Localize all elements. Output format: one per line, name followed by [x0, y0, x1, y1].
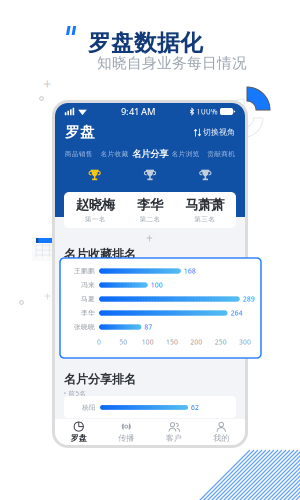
- staticText: 150: [166, 338, 178, 346]
- staticText: 168: [184, 267, 196, 275]
- staticText: 名片分享排名: [64, 372, 136, 387]
- staticText: 名片收藏排名: [64, 247, 136, 262]
- staticText: 张晓晓: [74, 323, 95, 331]
- button[interactable]: 传播: [102, 419, 150, 445]
- staticText: 罗盘数据化: [88, 29, 203, 57]
- staticText: 知晓自身业务每日情况: [97, 54, 247, 72]
- staticText: 100: [142, 338, 154, 346]
- button[interactable]: 切换视角: [194, 127, 235, 137]
- staticText: +: [146, 230, 153, 246]
- button[interactable]: 商品销售: [61, 150, 97, 158]
- staticText: 前5名: [68, 389, 86, 398]
- staticText: 罗盘: [65, 123, 95, 141]
- staticText: 马夏: [81, 295, 95, 303]
- staticText: 贡献商机: [207, 150, 235, 158]
- staticText: 名片浏览: [172, 150, 200, 158]
- staticText: 第三名: [194, 215, 215, 223]
- button[interactable]: 名片浏览: [168, 150, 203, 158]
- button[interactable]: 贡献商机: [203, 150, 239, 158]
- staticText: 客户: [166, 433, 182, 443]
- staticText: 切换视角: [203, 127, 235, 137]
- button[interactable]: 名片分享: [132, 148, 168, 160]
- staticText: 100%: [196, 106, 218, 117]
- staticText: 0: [97, 338, 101, 346]
- button[interactable]: 名片收藏: [97, 150, 132, 158]
- staticText: 第一名: [85, 215, 106, 223]
- staticText: 名片分享: [132, 148, 168, 160]
- staticText: 马萧萧: [185, 197, 224, 213]
- staticText: 李华: [137, 197, 163, 213]
- staticText: 87: [144, 323, 152, 331]
- staticText: +: [44, 288, 51, 304]
- staticText: 50: [119, 338, 127, 346]
- staticText: 我的: [213, 433, 229, 443]
- staticText: 杨阳: [82, 403, 96, 411]
- staticText: 250: [215, 338, 227, 346]
- staticText: 264: [230, 309, 242, 317]
- staticText: 名片收藏: [100, 150, 128, 158]
- staticText: 289: [243, 295, 255, 303]
- staticText: 赵晓梅: [76, 197, 115, 213]
- staticText: 62: [191, 403, 199, 412]
- staticText: 王鹏鹏: [74, 267, 95, 275]
- staticText: 300: [239, 338, 251, 346]
- staticText: 传播: [118, 433, 134, 443]
- staticText: 第二名: [139, 215, 160, 223]
- staticText: 9:41 AM: [121, 105, 156, 118]
- staticText: 李华: [81, 309, 95, 317]
- button[interactable]: 客户: [150, 419, 197, 445]
- staticText: 冯来: [81, 281, 95, 289]
- staticText: 罗盘: [71, 433, 87, 443]
- staticText: 100: [151, 281, 163, 289]
- staticText: 商品销售: [65, 150, 93, 158]
- button[interactable]: 罗盘: [55, 419, 102, 445]
- button[interactable]: 我的: [197, 419, 245, 445]
- staticText: 200: [190, 338, 202, 346]
- staticText: +: [43, 74, 51, 93]
